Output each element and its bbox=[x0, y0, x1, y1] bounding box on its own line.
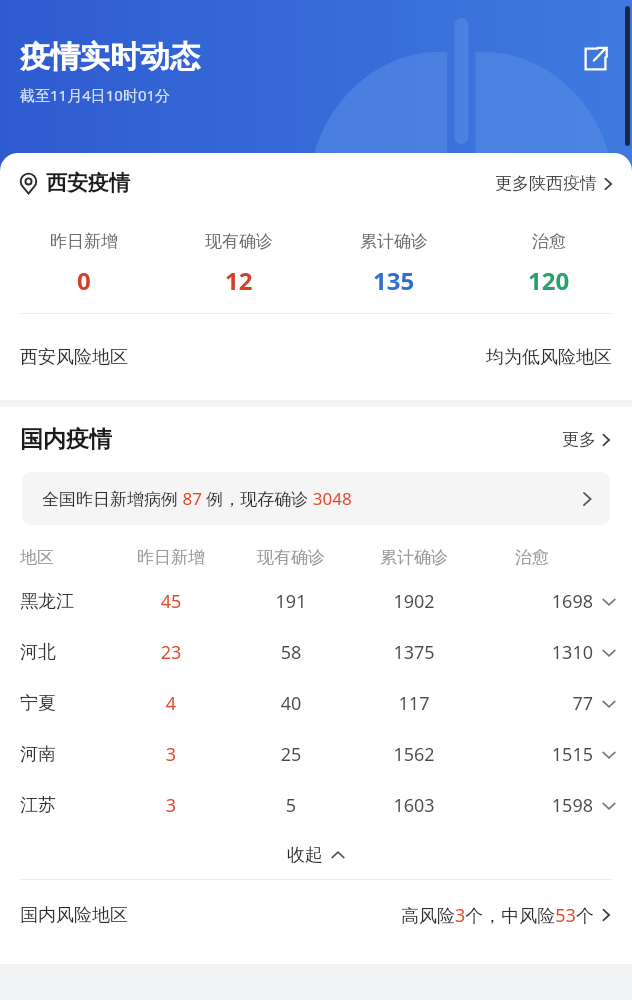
staticText: 累计确诊 bbox=[352, 547, 476, 568]
staticText: 江苏 bbox=[20, 794, 112, 817]
staticText: 累计确诊 bbox=[360, 231, 428, 252]
staticText: 地区 bbox=[20, 547, 112, 568]
button[interactable]: 江苏 bbox=[0, 780, 632, 831]
button[interactable]: 宁夏 bbox=[0, 678, 632, 729]
button[interactable]: 河北 bbox=[0, 627, 632, 678]
staticText: 河北 bbox=[20, 641, 112, 664]
staticText: 1515 bbox=[476, 742, 593, 767]
staticText: 更多陕西疫情 bbox=[495, 173, 597, 194]
staticText: 12 bbox=[225, 264, 253, 297]
staticText: 135 bbox=[373, 264, 415, 297]
staticText: 40 bbox=[230, 691, 352, 716]
staticText: 1603 bbox=[352, 793, 476, 818]
staticText: 截至11月4日10时01分 bbox=[20, 85, 171, 105]
staticText: 1562 bbox=[352, 742, 476, 767]
staticText: 77 bbox=[476, 691, 593, 716]
staticText: 河南 bbox=[20, 743, 112, 766]
staticText: 1310 bbox=[476, 640, 593, 665]
staticText: 宁夏 bbox=[20, 692, 112, 715]
staticText: 25 bbox=[230, 742, 352, 767]
staticText: 现有确诊 bbox=[230, 547, 352, 568]
staticText: 昨日新增 bbox=[50, 231, 118, 252]
button[interactable]: 更多 bbox=[562, 421, 612, 458]
staticText: 疫情实时动态 bbox=[20, 38, 200, 76]
staticText: 3 bbox=[112, 742, 230, 767]
staticText: 西安疫情 bbox=[46, 170, 130, 196]
staticText: 昨日新增 bbox=[112, 547, 230, 568]
staticText: 58 bbox=[230, 640, 352, 665]
button[interactable]: 河南 bbox=[0, 729, 632, 780]
staticText: 高风险3个，中风险53个 bbox=[401, 903, 594, 928]
staticText: 治愈 bbox=[532, 231, 566, 252]
button[interactable]: 收起 bbox=[0, 831, 632, 879]
staticText: 120 bbox=[528, 264, 570, 297]
staticText: 1598 bbox=[476, 793, 593, 818]
staticText: 治愈 bbox=[476, 547, 588, 568]
button[interactable]: 更多陕西疫情 bbox=[495, 165, 614, 202]
staticText: 3 bbox=[112, 793, 230, 818]
staticText: 收起 bbox=[287, 844, 323, 867]
staticText: 均为低风险地区 bbox=[486, 346, 612, 369]
staticText: 黑龙江 bbox=[20, 590, 112, 613]
button[interactable]: 全国昨日新增病例 87 例，现存确诊 3048 bbox=[22, 472, 610, 525]
staticText: 45 bbox=[112, 589, 230, 614]
staticText: 国内疫情 bbox=[20, 425, 112, 454]
staticText: 国内风险地区 bbox=[20, 904, 128, 927]
staticText: 西安风险地区 bbox=[20, 346, 128, 369]
staticText: 191 bbox=[230, 589, 352, 614]
button[interactable]: 国内风险地区 bbox=[0, 880, 632, 950]
button[interactable]: 西安风险地区 bbox=[0, 314, 632, 400]
staticText: 1902 bbox=[352, 589, 476, 614]
button[interactable]: 在新窗口打开 bbox=[576, 40, 614, 78]
staticText: 0 bbox=[77, 264, 91, 297]
staticText: 4 bbox=[112, 691, 230, 716]
staticText: 更多 bbox=[562, 429, 596, 450]
staticText: 1375 bbox=[352, 640, 476, 665]
staticText: 5 bbox=[230, 793, 352, 818]
staticText: 117 bbox=[352, 691, 476, 716]
staticText: 1698 bbox=[476, 589, 593, 614]
staticText: 23 bbox=[112, 640, 230, 665]
staticText: 现有确诊 bbox=[205, 231, 273, 252]
button[interactable]: 黑龙江 bbox=[0, 576, 632, 627]
staticText: 全国昨日新增病例 87 例，现存确诊 3048 bbox=[42, 487, 352, 510]
